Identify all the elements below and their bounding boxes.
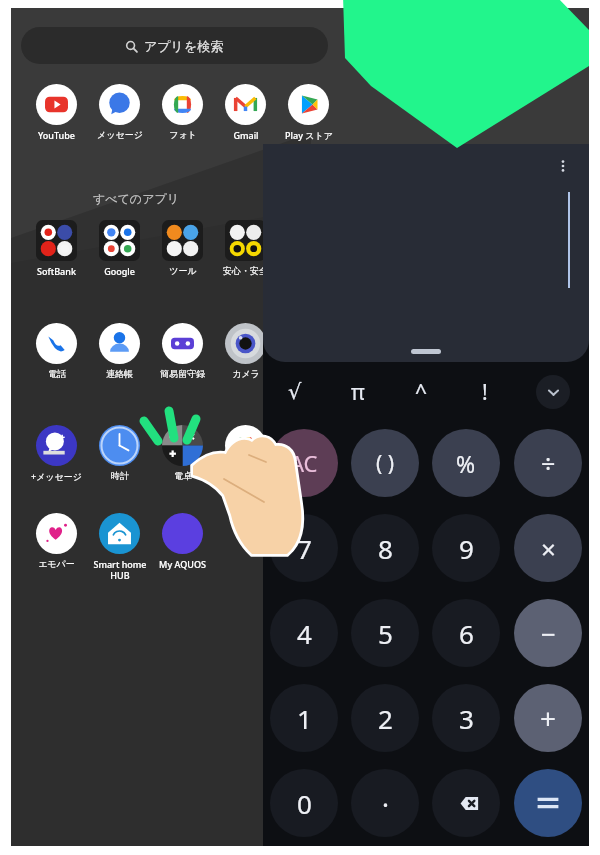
button[interactable]: 7 [270,514,338,582]
button[interactable]: その他のオプション [549,152,577,180]
button[interactable]: AC [270,429,338,497]
staticText: % [456,448,476,479]
button[interactable]: 1 [270,684,338,752]
button[interactable]: Gmail [214,84,277,141]
staticText: 1 [297,701,312,736]
staticText: AC [290,448,318,478]
staticText: 簡易留守録 [160,368,205,379]
staticText: 7 [297,531,312,566]
button[interactable]: 展開 [536,375,570,409]
button[interactable]: 2 [351,684,419,752]
button[interactable]: 安心・安全 [214,220,277,276]
button[interactable]: アプリを検索 [21,27,328,64]
button[interactable]: 電話 [25,323,88,379]
staticText: · [382,786,389,821]
button[interactable]: % [432,429,500,497]
button[interactable]: メッセージ [88,84,151,140]
staticText: すべてのアプリ [93,191,179,206]
button[interactable]: Google [88,220,151,277]
staticText: 4 [297,616,312,651]
button[interactable]: 4 [270,599,338,667]
button[interactable]: エモパー [25,513,88,569]
button[interactable]: 時計 [88,425,151,481]
button[interactable]: 3 [432,684,500,752]
staticText: ! [482,378,488,407]
staticText: − [541,616,556,651]
staticText: × [541,531,556,566]
button[interactable]: Smart home HUB [88,513,151,581]
staticText: 電話 [48,368,66,379]
staticText: 2 [378,701,393,736]
button[interactable]: フォト [151,84,214,140]
button[interactable]: × [514,514,582,582]
button[interactable]: ÷ [514,429,582,497]
staticText: 3 [459,701,474,736]
button[interactable]: − [514,599,582,667]
button[interactable]: 電卓 [151,425,214,481]
staticText: Google [104,265,135,277]
button[interactable]: 連絡帳 [88,323,151,379]
staticText: Play ストア [285,129,333,141]
staticText: 9 [459,531,474,566]
staticText: 5 [378,616,393,651]
button[interactable]: 8 [351,514,419,582]
staticText: YouTube [38,129,75,141]
staticText: ^ [415,378,428,407]
staticText: +メッセージ [31,470,82,482]
button[interactable]: 削除 [432,769,500,837]
button[interactable]: カメラ [214,323,277,379]
button[interactable]: フォト [214,425,277,481]
staticText: π [351,378,365,407]
button[interactable]: 簡易留守録 [151,323,214,379]
staticText: 0 [297,786,312,821]
button[interactable]: + [514,684,582,752]
button[interactable]: 0 [270,769,338,837]
staticText: 8 [378,531,393,566]
button[interactable]: · [351,769,419,837]
button[interactable]: +メッセージ [25,425,88,482]
button[interactable]: イコール [514,769,582,837]
button[interactable]: 6 [432,599,500,667]
staticText: エモパー [38,558,75,569]
staticText: 安心・安全 [223,265,268,276]
staticText: メッセージ [97,129,143,140]
button[interactable]: √ [263,370,326,414]
button[interactable]: ( ) [351,429,419,497]
staticText: 連絡帳 [106,368,133,379]
button[interactable]: YouTube [25,84,88,141]
button[interactable]: Play ストア [277,84,340,141]
staticText: フォト [169,129,197,140]
staticText: ÷ [541,446,556,480]
button[interactable]: ^ [389,370,453,414]
button[interactable]: My AQUOS [151,513,214,570]
button[interactable]: 9 [432,514,500,582]
staticText: Gmail [233,129,259,141]
button[interactable]: SoftBank [25,220,88,277]
staticText: SoftBank [37,265,76,277]
staticText: + [540,699,557,737]
staticText: My AQUOS [159,558,206,570]
button[interactable]: π [326,370,389,414]
staticText: ツール [169,265,197,276]
staticText: √ [288,380,302,404]
staticText: 時計 [111,470,129,481]
staticText: 6 [459,616,474,651]
button[interactable]: 5 [351,599,419,667]
staticText: Smart home HUB [93,558,147,581]
button[interactable]: ! [453,370,517,414]
staticText: ( ) [376,449,395,478]
staticText: カメラ [232,368,260,379]
staticText: 電卓 [174,470,192,481]
staticText: アプリを検索 [144,38,224,54]
button[interactable]: ツール [151,220,214,276]
